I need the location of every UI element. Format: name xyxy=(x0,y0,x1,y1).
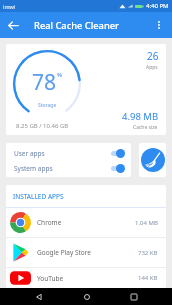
staticText: Apps xyxy=(146,64,158,71)
staticText: 4:40 PM xyxy=(146,2,169,10)
button[interactable]: Google Play Store xyxy=(6,238,166,267)
staticText: System apps xyxy=(14,164,53,173)
staticText: 8.25 GB / 10.46 GB xyxy=(16,122,69,130)
staticText: Cache size xyxy=(133,124,158,131)
staticText: 26 xyxy=(147,49,159,63)
button[interactable]: Home xyxy=(78,288,95,305)
button[interactable]: Back xyxy=(0,12,26,38)
button[interactable]: Recents xyxy=(125,288,142,305)
button[interactable]: Back xyxy=(30,288,47,305)
staticText: 4.98 MB xyxy=(122,110,159,123)
button[interactable]: System apps xyxy=(6,162,131,174)
staticText: Storage xyxy=(38,102,57,109)
staticText: Real Cache Cleaner xyxy=(34,19,119,32)
button[interactable]: Chrome xyxy=(6,208,166,237)
staticText: 78 xyxy=(32,68,57,97)
staticText: 1.04 MB xyxy=(135,219,158,227)
button[interactable]: Clean cache xyxy=(139,143,166,177)
button[interactable]: YouTube xyxy=(6,268,166,288)
staticText: 144 KB xyxy=(138,274,158,282)
button[interactable]: User apps xyxy=(6,147,131,159)
staticText: YouTube xyxy=(37,274,64,283)
staticText: User apps xyxy=(14,149,45,158)
button[interactable]: More options xyxy=(146,12,172,38)
staticText: 732 KB xyxy=(138,249,158,257)
staticText: INSTALLED APPS xyxy=(13,192,64,201)
staticText: Chrome xyxy=(37,218,62,227)
staticText: % xyxy=(57,71,62,79)
staticText: Google Play Store xyxy=(37,248,91,257)
staticText: imwi xyxy=(3,3,16,10)
